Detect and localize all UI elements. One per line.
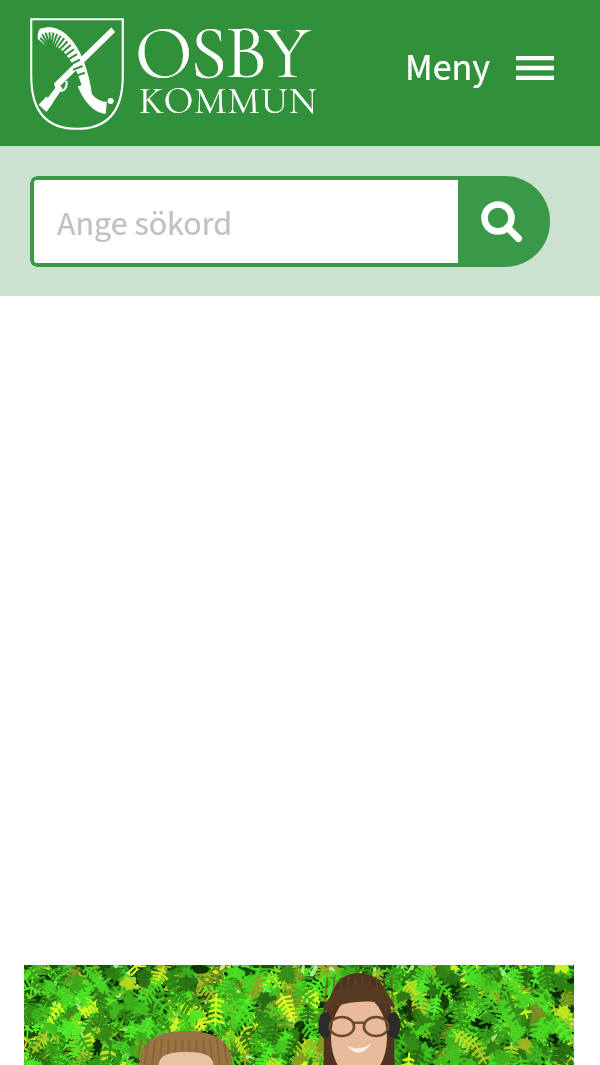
staticText: Ange sökord [57, 200, 233, 248]
staticText: OSBY [135, 8, 309, 99]
button[interactable]: Meny [405, 41, 554, 95]
button[interactable]: Sök [458, 176, 550, 267]
staticText: KOMMUN [139, 77, 318, 124]
button[interactable]: Öppna menyn [516, 56, 554, 80]
button[interactable]: Osby kommun – till startsidan [30, 18, 303, 156]
staticText: Meny [405, 41, 491, 95]
button[interactable]: Ange sökord [30, 176, 470, 267]
button[interactable]: Nyhetsbild [24, 965, 574, 1065]
